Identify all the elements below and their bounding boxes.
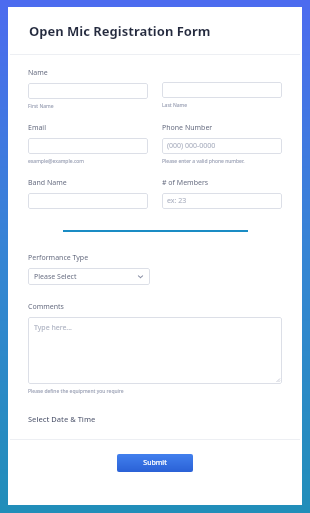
staticText: Comments <box>28 302 64 312</box>
staticText: (000) 000-0000 <box>167 141 216 151</box>
button[interactable]: (000) 000-0000 <box>162 138 282 154</box>
other: Open dropdown <box>137 273 144 280</box>
button[interactable]: ex: 23 <box>162 193 282 209</box>
staticText: example@example.com <box>28 158 84 165</box>
button[interactable]: Type here... <box>28 317 282 384</box>
staticText: Please enter a valid phone number. <box>162 158 245 165</box>
staticText: Email <box>28 123 46 133</box>
staticText: Please Select <box>34 272 77 282</box>
staticText: # of Members <box>162 178 209 188</box>
staticText: Type here... <box>34 323 72 333</box>
button[interactable] <box>28 193 148 209</box>
staticText: First Name <box>28 103 54 110</box>
staticText: ex: 23 <box>167 196 187 206</box>
staticText: Please define the equipment you require <box>28 388 124 395</box>
button[interactable] <box>28 138 148 154</box>
staticText: Band Name <box>28 178 67 188</box>
staticText: Last Name <box>162 102 188 109</box>
staticText: Select Date & Time <box>28 414 96 424</box>
button[interactable] <box>28 83 148 99</box>
button[interactable] <box>162 82 282 98</box>
button[interactable]: Please Select <box>28 268 150 285</box>
staticText: Open Mic Registration Form <box>29 22 211 40</box>
staticText: Submit <box>143 458 167 468</box>
button[interactable]: Submit <box>117 454 193 472</box>
staticText: Performance Type <box>28 253 89 263</box>
staticText: Name <box>28 68 48 78</box>
staticText: Phone Number <box>162 123 213 133</box>
